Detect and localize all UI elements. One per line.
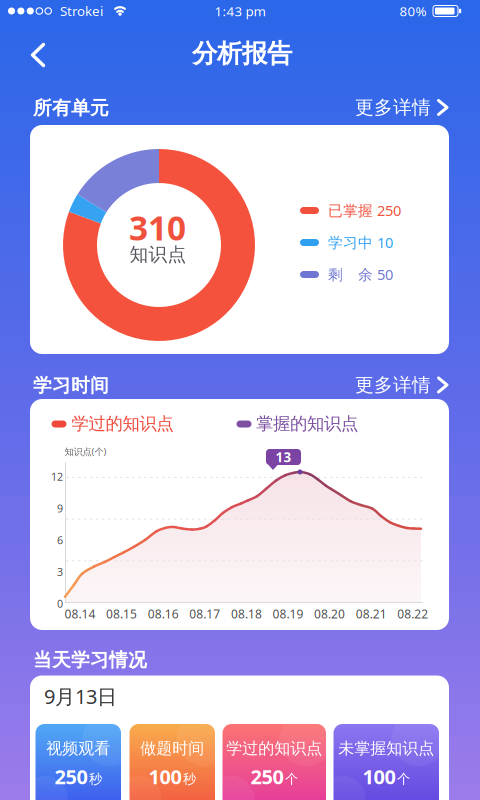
staticText: 08.14	[64, 606, 95, 622]
staticText: 个	[285, 771, 298, 787]
staticText: 学过的知识点	[226, 739, 322, 758]
staticText: 13	[275, 448, 291, 466]
staticText: 更多详情	[355, 373, 431, 396]
staticText: Strokei	[60, 2, 103, 20]
staticText: 12	[51, 469, 63, 484]
staticText: 学习中 10	[328, 232, 393, 252]
staticText: 6	[57, 533, 63, 547]
staticText: 掌握的知识点	[256, 413, 358, 434]
staticText: 08.22	[397, 606, 428, 622]
staticText: 分析报告	[192, 38, 292, 69]
staticText: 9	[57, 501, 63, 515]
button[interactable]: 更多详情	[355, 96, 449, 119]
staticText: 08.20	[314, 606, 345, 622]
staticText: 知识点	[129, 243, 186, 266]
staticText: 知识点(个)	[64, 445, 106, 458]
staticText: 08.19	[272, 606, 303, 622]
staticText: 08.21	[356, 606, 387, 622]
staticText: 学习时间	[33, 374, 109, 397]
staticText: 1:43 pm	[214, 2, 265, 20]
staticText: 08.17	[189, 606, 220, 622]
staticText: 0	[57, 597, 63, 611]
staticText: 学过的知识点	[71, 413, 173, 434]
staticText: 视频观看	[46, 739, 110, 758]
staticText: 所有单元	[33, 96, 109, 119]
staticText: 08.16	[148, 606, 179, 622]
staticText: 80%	[399, 2, 426, 20]
staticText: 更多详情	[355, 96, 431, 119]
staticText: 未掌握知识点	[338, 739, 434, 758]
staticText: 个	[397, 771, 410, 787]
staticText: 已掌握 250	[328, 200, 401, 220]
staticText: 08.15	[106, 606, 137, 622]
staticText: 250	[250, 763, 283, 790]
staticText: 100	[362, 763, 395, 790]
staticText: 当天学习情况	[33, 648, 147, 671]
button[interactable]: Back	[30, 42, 46, 67]
staticText: 剩 余 50	[328, 264, 393, 284]
staticText: 310	[129, 205, 186, 250]
staticText: 秒	[89, 771, 102, 787]
button[interactable]: 更多详情	[355, 373, 449, 396]
staticText: 做题时间	[140, 739, 204, 758]
staticText: 9月13日	[44, 683, 117, 710]
staticText: 100	[148, 763, 181, 790]
staticText: 3	[57, 565, 63, 579]
staticText: 250	[54, 763, 87, 790]
staticText: 08.18	[231, 606, 262, 622]
staticText: 秒	[183, 771, 196, 787]
